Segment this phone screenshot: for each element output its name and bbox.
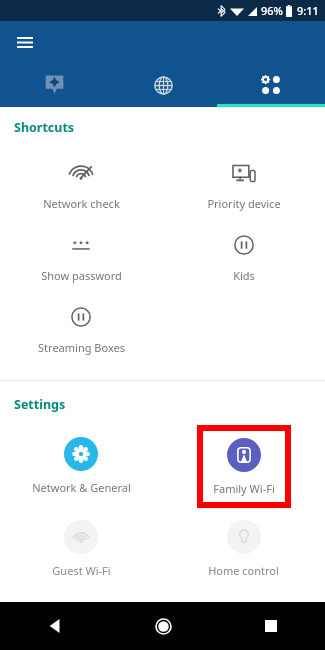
staticText: Streaming Boxes — [38, 340, 125, 355]
button[interactable]: Tab — [0, 63, 109, 107]
staticText: Kids — [233, 268, 255, 283]
button[interactable]: Family Wi-Fi — [203, 431, 285, 502]
staticText: Settings — [14, 396, 66, 413]
staticText: Priority device — [207, 196, 281, 211]
button[interactable]: Guest Wi-Fi — [0, 508, 162, 590]
button[interactable]: Tab — [109, 63, 217, 107]
button[interactable]: Kids — [162, 222, 325, 294]
staticText: 96% — [261, 3, 283, 18]
staticText: Guest Wi-Fi — [52, 563, 111, 578]
button[interactable]: Tab — [217, 63, 325, 107]
staticText: Network & General — [32, 480, 131, 495]
button[interactable]: Network & General — [0, 424, 162, 508]
button[interactable]: Back — [0, 602, 109, 650]
staticText: Network check — [43, 196, 120, 211]
button[interactable]: Show password — [0, 222, 162, 294]
staticText: Home control — [208, 563, 279, 578]
button[interactable]: Home — [109, 602, 217, 650]
staticText: Family Wi-Fi — [213, 481, 275, 496]
staticText: 9:11 — [297, 3, 319, 18]
button[interactable]: Recent apps — [217, 602, 325, 650]
button[interactable]: Home control — [162, 508, 325, 590]
staticText: Show password — [41, 268, 122, 283]
button[interactable]: Streaming Boxes — [0, 294, 162, 366]
button[interactable]: Priority device — [162, 150, 325, 222]
button[interactable]: Network check — [0, 150, 162, 222]
staticText: Shortcuts — [14, 119, 75, 136]
button[interactable]: Open navigation menu — [8, 25, 42, 59]
